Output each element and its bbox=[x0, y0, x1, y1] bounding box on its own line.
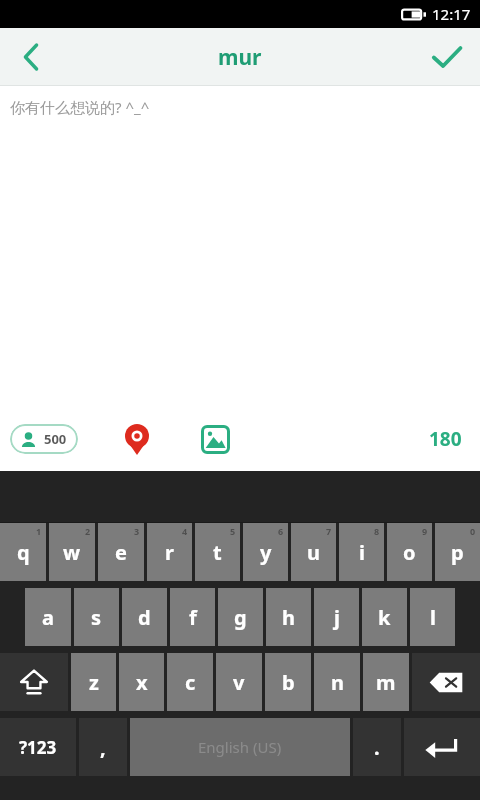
staticText: n bbox=[331, 669, 344, 696]
staticText: mur bbox=[218, 43, 262, 72]
button[interactable]: Shift bbox=[0, 653, 68, 711]
button[interactable]: 1 bbox=[0, 523, 46, 581]
staticText: q bbox=[17, 539, 30, 566]
button[interactable]: 0 bbox=[435, 523, 480, 581]
staticText: v bbox=[233, 669, 245, 696]
button[interactable]: h bbox=[266, 588, 311, 646]
button[interactable]: z bbox=[71, 653, 116, 711]
button[interactable]: f bbox=[170, 588, 215, 646]
staticText: k bbox=[378, 604, 391, 631]
button[interactable]: . bbox=[353, 718, 401, 776]
button[interactable]: s bbox=[74, 588, 119, 646]
staticText: b bbox=[282, 669, 295, 696]
staticText: o bbox=[403, 539, 416, 566]
button[interactable]: 5 bbox=[195, 523, 240, 581]
button[interactable]: a bbox=[25, 588, 71, 646]
staticText: c bbox=[185, 669, 196, 696]
staticText: . bbox=[374, 734, 380, 761]
button[interactable]: 2 bbox=[49, 523, 95, 581]
staticText: a bbox=[42, 604, 54, 631]
staticText: h bbox=[282, 604, 295, 631]
staticText: z bbox=[89, 669, 99, 696]
button[interactable]: Enter bbox=[404, 718, 480, 776]
button[interactable]: k bbox=[362, 588, 407, 646]
button[interactable]: j bbox=[314, 588, 359, 646]
staticText: f bbox=[189, 604, 197, 631]
button[interactable]: n bbox=[314, 653, 360, 711]
staticText: y bbox=[260, 539, 272, 566]
staticText: , bbox=[100, 734, 106, 761]
button[interactable]: Back bbox=[0, 28, 62, 86]
staticText: e bbox=[115, 539, 127, 566]
staticText: x bbox=[136, 669, 148, 696]
staticText: 6 bbox=[278, 525, 284, 537]
staticText: 180 bbox=[429, 426, 462, 452]
button[interactable]: English (US) bbox=[130, 718, 350, 776]
button[interactable]: 3 bbox=[98, 523, 144, 581]
staticText: 9 bbox=[422, 525, 428, 537]
staticText: d bbox=[138, 604, 151, 631]
staticText: 5 bbox=[230, 525, 236, 537]
staticText: g bbox=[234, 604, 247, 631]
staticText: 你有什么想说的? ^_^ bbox=[10, 97, 150, 117]
button[interactable]: d bbox=[122, 588, 167, 646]
button[interactable]: c bbox=[167, 653, 213, 711]
staticText: 1 bbox=[36, 525, 42, 537]
button[interactable]: Confirm bbox=[414, 28, 480, 86]
staticText: 3 bbox=[134, 525, 140, 537]
staticText: m bbox=[376, 669, 396, 696]
staticText: p bbox=[451, 539, 464, 566]
staticText: English (US) bbox=[198, 737, 282, 757]
staticText: 500 bbox=[44, 430, 67, 448]
button[interactable]: , bbox=[79, 718, 127, 776]
button[interactable]: g bbox=[218, 588, 263, 646]
button[interactable]: 4 bbox=[147, 523, 192, 581]
button[interactable]: 9 bbox=[387, 523, 432, 581]
button[interactable]: b bbox=[265, 653, 311, 711]
button[interactable]: 500 bbox=[10, 424, 78, 454]
button[interactable]: Add photo bbox=[192, 416, 238, 462]
staticText: 12:17 bbox=[432, 4, 471, 24]
button[interactable]: l bbox=[410, 588, 455, 646]
staticText: j bbox=[334, 604, 340, 631]
staticText: 2 bbox=[85, 525, 91, 537]
staticText: 4 bbox=[182, 525, 188, 537]
button[interactable]: 7 bbox=[291, 523, 336, 581]
staticText: u bbox=[307, 539, 320, 566]
button[interactable]: Backspace bbox=[412, 653, 480, 711]
staticText: w bbox=[63, 539, 81, 566]
staticText: i bbox=[359, 539, 365, 566]
button[interactable]: ?123 bbox=[0, 718, 76, 776]
staticText: 0 bbox=[470, 525, 476, 537]
staticText: s bbox=[91, 604, 102, 631]
button[interactable]: v bbox=[216, 653, 262, 711]
button[interactable]: 8 bbox=[339, 523, 384, 581]
staticText: 7 bbox=[326, 525, 332, 537]
staticText: 8 bbox=[374, 525, 380, 537]
staticText: r bbox=[165, 539, 174, 566]
button[interactable]: Location bbox=[114, 416, 160, 462]
staticText: t bbox=[213, 539, 222, 566]
button[interactable]: m bbox=[363, 653, 409, 711]
button[interactable]: x bbox=[119, 653, 164, 711]
staticText: l bbox=[430, 604, 436, 631]
staticText: ?123 bbox=[19, 736, 57, 759]
button[interactable]: 6 bbox=[243, 523, 288, 581]
